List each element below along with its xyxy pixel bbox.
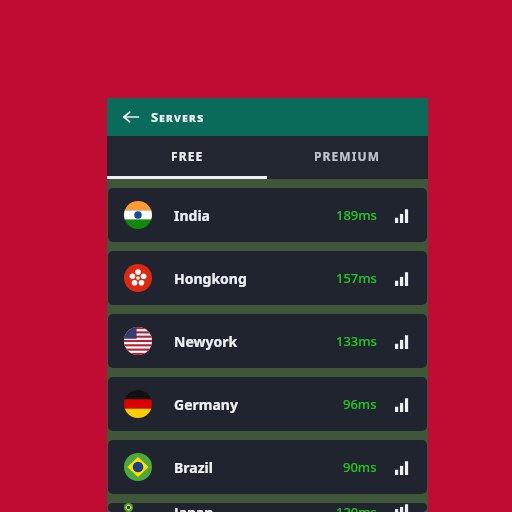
staticText: PREMIUM — [314, 148, 381, 164]
button[interactable]: Newyork — [108, 314, 427, 368]
staticText: Japan — [174, 503, 214, 512]
staticText: Sᴇʀᴠᴇʀs — [151, 108, 205, 126]
button[interactable]: FREE — [107, 136, 267, 176]
button[interactable]: Hongkong — [108, 251, 427, 305]
staticText: FREE — [171, 148, 204, 164]
staticText: Hongkong — [174, 269, 247, 288]
button[interactable]: PREMIUM — [267, 136, 428, 176]
staticText: Newyork — [174, 332, 238, 351]
staticText: India — [174, 206, 210, 225]
button[interactable]: Back — [117, 103, 145, 131]
staticText: 189ms — [336, 206, 377, 224]
staticText: 157ms — [336, 269, 377, 287]
staticText: 133ms — [336, 332, 377, 350]
staticText: Germany — [174, 395, 238, 414]
button[interactable]: India — [108, 188, 427, 242]
staticText: 120ms — [336, 503, 377, 512]
staticText: 90ms — [343, 458, 377, 476]
staticText: 96ms — [343, 395, 377, 413]
button[interactable]: Germany — [108, 377, 427, 431]
button[interactable]: Brazil — [108, 440, 427, 494]
staticText: Brazil — [174, 458, 213, 477]
button[interactable]: Japan — [108, 503, 427, 512]
